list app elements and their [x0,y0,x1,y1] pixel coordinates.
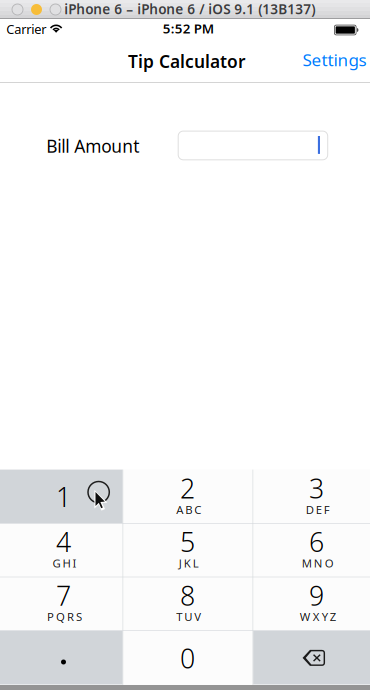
staticText: 7 [56,577,71,613]
button[interactable]: 5 [123,523,253,577]
staticText: A B C [176,502,201,517]
button[interactable]: 0 [123,631,253,684]
button[interactable]: 1 [0,470,123,523]
staticText: P Q R S [47,609,82,624]
staticText: D E F [306,502,330,517]
staticText: G H I [53,555,77,571]
staticText: Tip Calculator [128,49,246,73]
staticText: 5 [180,523,195,560]
button[interactable]: 4 [0,523,123,577]
button[interactable]: 7 [0,577,123,630]
button[interactable]: Delete [253,631,370,684]
staticText: 8 [180,577,195,613]
staticText: Settings [303,48,367,71]
button[interactable]: 2 [123,470,253,523]
button[interactable]: 8 [123,577,253,630]
button[interactable]: 9 [253,577,370,630]
staticText: 3 [309,470,324,506]
button[interactable]: Settings [291,45,367,75]
staticText: Bill Amount [46,134,139,158]
button[interactable]: Decimal point [0,631,123,684]
staticText: 9 [309,577,324,613]
staticText: 6 [309,523,324,560]
staticText: 0 [180,640,195,676]
staticText: M N O [302,555,334,571]
button[interactable]: 3 [253,470,370,523]
staticText: J K L [179,555,199,571]
staticText: 5:52 PM [163,19,214,37]
staticText: T U V [176,609,201,624]
staticText: W X Y Z [300,609,336,624]
staticText: 1 [56,478,71,515]
button[interactable]: 6 [253,523,370,577]
staticText: 4 [56,523,71,560]
staticText: Carrier [6,20,46,38]
staticText: 2 [180,470,195,506]
staticText: iPhone 6 – iPhone 6 / iOS 9.1 (13B137) [64,0,315,18]
